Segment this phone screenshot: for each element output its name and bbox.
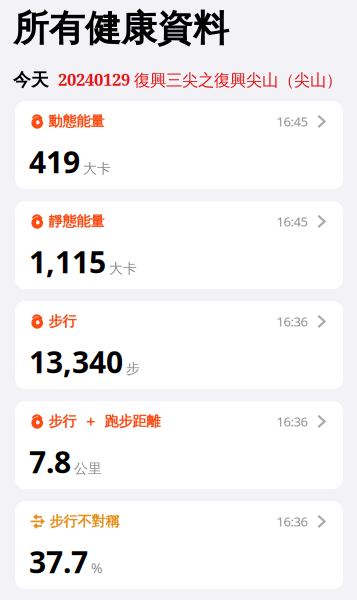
staticText: 步行不對稱: [49, 513, 119, 530]
staticText: 所有健康資料: [13, 6, 229, 51]
button[interactable]: 步行 ＋ 跑步距離: [15, 401, 343, 489]
staticText: 37.7: [29, 541, 88, 582]
staticText: %: [91, 558, 102, 577]
staticText: 419: [29, 141, 80, 182]
staticText: 步行: [48, 313, 76, 330]
staticText: 公里: [74, 460, 102, 477]
staticText: 7.8: [29, 441, 71, 482]
staticText: 1,115: [29, 241, 106, 282]
staticText: 大卡: [83, 160, 111, 177]
staticText: 16:45: [276, 113, 307, 130]
staticText: 20240129: [58, 68, 130, 91]
staticText: 16:45: [276, 213, 307, 230]
staticText: 16:36: [276, 413, 307, 430]
staticText: 16:36: [276, 313, 307, 330]
button[interactable]: 步行: [15, 301, 343, 389]
staticText: 動態能量: [48, 113, 104, 130]
staticText: 復興三尖之復興尖山（尖山）: [134, 70, 342, 91]
staticText: 16:36: [276, 513, 307, 530]
staticText: 靜態能量: [48, 213, 104, 230]
button[interactable]: 步行不對稱: [15, 501, 343, 589]
button[interactable]: 動態能量: [15, 101, 343, 189]
staticText: 13,340: [29, 341, 123, 382]
staticText: 步: [126, 360, 140, 377]
staticText: 步行 ＋ 跑步距離: [48, 413, 160, 430]
button[interactable]: 靜態能量: [15, 201, 343, 289]
staticText: 今天: [13, 69, 49, 91]
staticText: 大卡: [109, 260, 137, 277]
